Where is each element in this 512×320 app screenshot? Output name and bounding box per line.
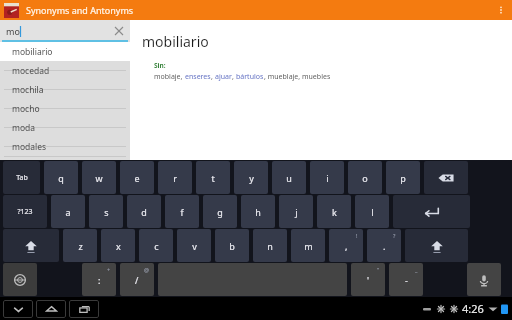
button[interactable]: q [44,161,78,194]
staticText: a [65,206,71,218]
button[interactable]: Recent apps [69,300,99,318]
button[interactable]: Voice input [467,263,501,296]
staticText: " [377,266,380,273]
button[interactable]: ?123 [3,195,47,228]
staticText: w [95,172,103,184]
button[interactable]: Shift [3,229,59,262]
staticText: p [400,172,406,184]
button[interactable]: s [89,195,123,228]
staticText: , [211,72,215,82]
button[interactable]: c [139,229,173,262]
button[interactable]: y [234,161,268,194]
staticText: : [98,274,101,286]
staticText: mobiliario [12,46,53,58]
button[interactable]: k [317,195,351,228]
button[interactable]: modales [0,137,130,156]
staticText: _ [415,266,418,273]
button[interactable]: mobiliario [0,42,130,61]
staticText: + [107,266,111,273]
staticText: o [362,172,368,184]
staticText: ' [367,274,370,286]
button[interactable]: h [241,195,275,228]
button[interactable]: Shift [405,229,468,262]
staticText: ajuar [215,72,232,82]
staticText: mochila [12,84,44,96]
button[interactable]: t [196,161,230,194]
staticText: - [405,274,408,286]
button[interactable]: v [177,229,211,262]
button[interactable]: bártulos [236,72,264,82]
staticText: Tab [16,173,28,183]
button[interactable]: mocedad [0,61,130,80]
staticText: k [332,206,337,218]
staticText: j [295,206,298,218]
button[interactable]: : [82,263,116,296]
staticText: d [141,206,147,218]
button[interactable]: Hide keyboard [3,300,33,318]
button[interactable]: z [63,229,97,262]
staticText: mobiliario [142,32,209,51]
button[interactable]: m [291,229,325,262]
staticText: moblaje, [154,72,185,82]
staticText: y [249,172,254,184]
staticText: l [371,206,374,218]
staticText: Synonyms and Antonyms [26,4,134,16]
staticText: s [104,206,109,218]
button[interactable]: x [101,229,135,262]
button[interactable]: Backspace [424,161,468,194]
staticText: v [192,240,197,252]
staticText: q [58,172,64,184]
staticText: moda [12,122,36,134]
button[interactable]: p [386,161,420,194]
staticText: enseres [185,72,211,82]
button[interactable]: mocho [0,99,130,118]
button[interactable]: l [355,195,389,228]
button[interactable]: w [82,161,116,194]
button[interactable]: enseres [185,72,211,82]
button[interactable]: / [120,263,154,296]
button[interactable]: b [215,229,249,262]
button[interactable]: u [272,161,306,194]
button[interactable]: d [127,195,161,228]
button[interactable]: j [279,195,313,228]
staticText: , [232,72,236,82]
button[interactable]: Home [36,300,66,318]
button[interactable]: moda [0,118,130,137]
staticText: x [116,240,121,252]
button[interactable]: ajuar [215,72,232,82]
staticText: , mueblaje, muebles [264,72,331,82]
button[interactable]: o [348,161,382,194]
button[interactable]: a [51,195,85,228]
staticText: ? [393,232,396,239]
staticText: m [304,240,313,252]
button[interactable]: , [329,229,363,262]
button[interactable]: i [310,161,344,194]
button[interactable]: - [389,263,423,296]
button[interactable]: Clear search [112,24,126,38]
staticText: modales [12,141,47,153]
staticText: mocho [12,103,40,115]
staticText: e [134,172,140,184]
staticText: . [383,240,386,252]
button[interactable]: ' [351,263,385,296]
staticText: c [154,240,159,252]
button[interactable]: . [367,229,401,262]
staticText: / [135,274,139,286]
button[interactable]: Tab [3,161,40,194]
button[interactable]: Change keyboard [3,263,37,296]
button[interactable]: More options [490,0,512,20]
staticText: @ [144,266,149,273]
button[interactable]: e [120,161,154,194]
staticText: z [78,240,83,252]
staticText: ?123 [17,207,33,217]
staticText: t [211,172,215,184]
button[interactable]: r [158,161,192,194]
staticText: b [229,240,235,252]
button[interactable]: mochila [0,80,130,99]
button[interactable]: g [203,195,237,228]
button[interactable]: f [165,195,199,228]
button[interactable]: Enter [393,195,470,228]
button[interactable]: n [253,229,287,262]
